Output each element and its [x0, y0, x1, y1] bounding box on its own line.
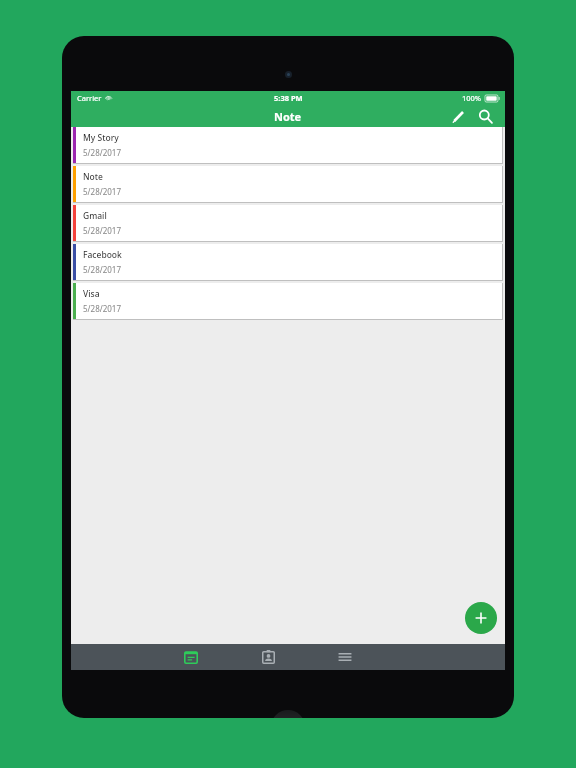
button[interactable]: My Story [73, 127, 502, 163]
staticText: 5/28/2017 [83, 225, 121, 236]
button[interactable]: Note [73, 166, 502, 202]
staticText: Note [274, 109, 302, 124]
button[interactable]: Search [473, 105, 497, 127]
staticText: Note [83, 171, 103, 183]
staticText: 100% [462, 93, 482, 103]
staticText: Facebook [83, 249, 122, 261]
button[interactable]: Facebook [73, 244, 502, 280]
staticText: My Story [83, 132, 119, 144]
staticText: 5/28/2017 [83, 186, 121, 197]
staticText: 5:38 PM [274, 93, 303, 103]
staticText: 5/28/2017 [83, 303, 121, 314]
button[interactable]: Visa [73, 283, 502, 319]
staticText: Carrier [77, 93, 102, 103]
staticText: Visa [83, 288, 100, 300]
button[interactable]: Contacts [246, 644, 290, 670]
button[interactable]: Gmail [73, 205, 502, 241]
staticText: 5/28/2017 [83, 147, 121, 158]
button[interactable]: Notes [169, 644, 213, 670]
staticText: Gmail [83, 210, 107, 222]
staticText: 5/28/2017 [83, 264, 121, 275]
button[interactable]: Compose [446, 105, 470, 127]
button[interactable]: Add note [465, 602, 497, 634]
button[interactable]: Menu [323, 644, 367, 670]
